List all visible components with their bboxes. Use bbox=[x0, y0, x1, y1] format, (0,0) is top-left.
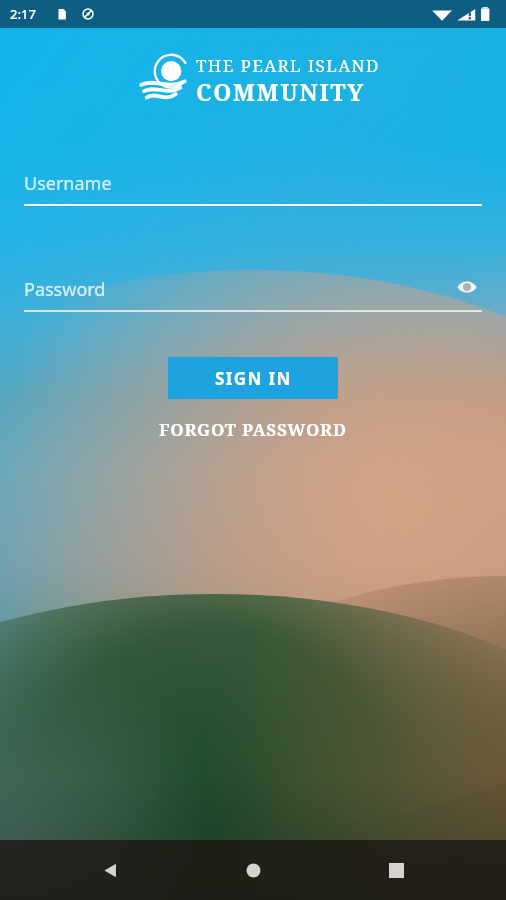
staticText: 2:17 bbox=[10, 5, 36, 23]
button[interactable]: Username bbox=[24, 160, 482, 206]
staticText: Password bbox=[24, 277, 106, 302]
button[interactable]: Show password bbox=[452, 272, 482, 302]
button[interactable]: SIGN IN bbox=[168, 357, 338, 399]
staticText: Username bbox=[24, 171, 112, 196]
staticText: COMMUNITY bbox=[196, 76, 365, 107]
staticText: FORGOT PASSWORD bbox=[159, 418, 347, 441]
button[interactable]: Recent apps bbox=[374, 848, 418, 892]
button[interactable]: Back bbox=[88, 848, 132, 892]
staticText: SIGN IN bbox=[215, 367, 292, 390]
button[interactable]: FORGOT PASSWORD bbox=[159, 418, 347, 441]
button[interactable]: Password bbox=[24, 266, 482, 312]
button[interactable]: Home bbox=[231, 848, 275, 892]
staticText: THE PEARL ISLAND bbox=[196, 54, 380, 77]
